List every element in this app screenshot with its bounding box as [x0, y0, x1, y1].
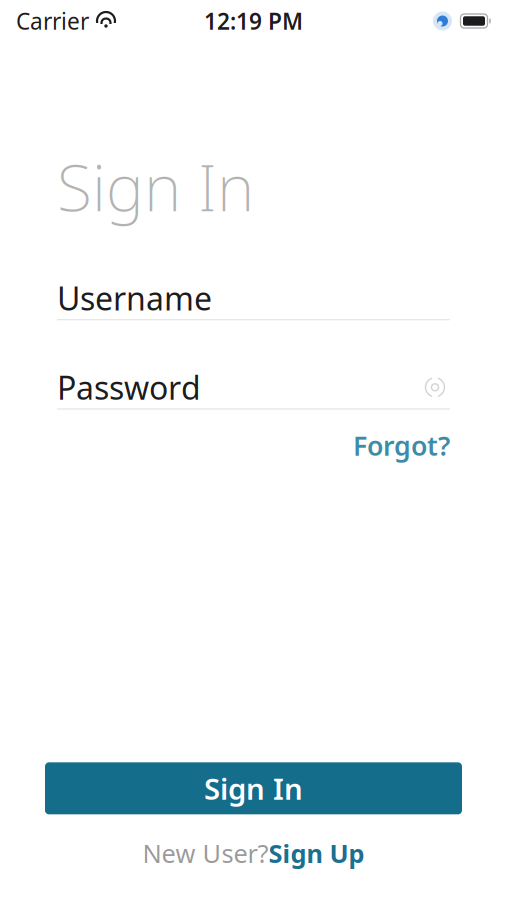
staticText: Password: [57, 366, 201, 408]
staticText: Sign Up: [268, 836, 364, 870]
staticText: Sign In: [57, 144, 254, 229]
button[interactable]: New User?: [132, 830, 374, 876]
staticText: Sign In: [204, 769, 303, 808]
staticText: Carrier: [16, 6, 89, 36]
button[interactable]: Show password: [420, 375, 450, 399]
staticText: Forgot?: [353, 428, 450, 463]
staticText: New User?: [142, 836, 268, 870]
button[interactable]: Forgot?: [353, 424, 450, 467]
button[interactable]: Sign In: [45, 762, 462, 814]
staticText: 12:19 PM: [204, 6, 303, 36]
staticText: Username: [57, 277, 212, 319]
